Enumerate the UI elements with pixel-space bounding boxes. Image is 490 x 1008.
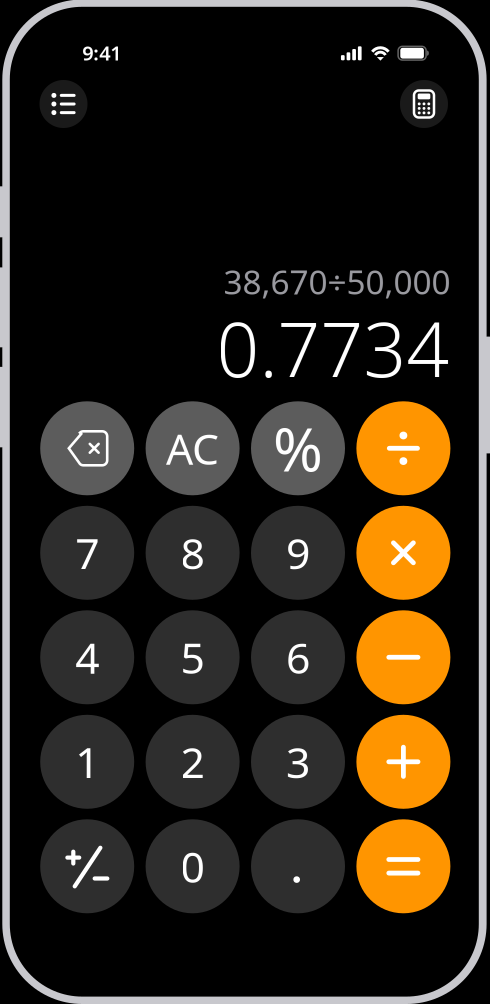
button[interactable]: Divide (356, 401, 450, 495)
staticText: 7 (75, 524, 99, 581)
staticText: 3 (286, 733, 310, 790)
button[interactable]: 0 (146, 819, 240, 913)
staticText: AC (166, 420, 219, 477)
staticText: 9:41 (82, 39, 121, 66)
staticText: 38,670÷50,000 (223, 259, 450, 304)
staticText: % (273, 408, 323, 488)
button[interactable]: History (39, 80, 87, 128)
button[interactable]: 3 (251, 715, 345, 809)
button[interactable]: 8 (146, 506, 240, 600)
button[interactable]: 4 (40, 610, 134, 704)
button[interactable]: 7 (40, 506, 134, 600)
staticText: 2 (181, 733, 205, 790)
button[interactable]: Plus minus (40, 819, 134, 913)
button[interactable]: Decimal point (251, 819, 345, 913)
staticText: 4 (75, 629, 99, 686)
button[interactable]: Percent (251, 401, 345, 495)
button[interactable]: Add (356, 715, 450, 809)
button[interactable]: 1 (40, 715, 134, 809)
button[interactable]: Subtract (356, 610, 450, 704)
staticText: 1 (75, 733, 99, 790)
staticText: 0.7734 (216, 298, 449, 398)
button[interactable]: All clear (146, 401, 240, 495)
staticText: 5 (181, 629, 205, 686)
button[interactable]: 9 (251, 506, 345, 600)
staticText: 6 (286, 629, 310, 686)
staticText: 0 (181, 838, 205, 895)
staticText: 9 (286, 524, 310, 581)
staticText: 8 (181, 524, 205, 581)
button[interactable]: 5 (146, 610, 240, 704)
button[interactable]: Equals (356, 819, 450, 913)
button[interactable]: Calculator (400, 80, 448, 128)
button[interactable]: Delete (40, 401, 134, 495)
button[interactable]: 2 (146, 715, 240, 809)
button[interactable]: Multiply (356, 506, 450, 600)
button[interactable]: 6 (251, 610, 345, 704)
